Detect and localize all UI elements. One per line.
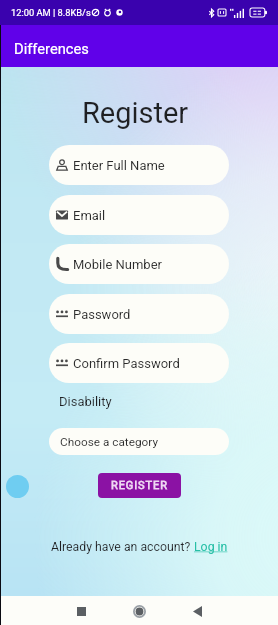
staticText: 12:00 AM | 8.8KB/s [11, 7, 91, 18]
button[interactable]: REGISTER [98, 473, 181, 498]
staticText: Mobile Number [73, 257, 162, 272]
staticText: Disability [59, 394, 112, 409]
staticText: Confirm Password [73, 356, 180, 371]
staticText: Log in [194, 540, 228, 554]
staticText: Choose a category [60, 435, 158, 449]
staticText: REGISTER [111, 479, 168, 492]
button[interactable]: Back [183, 597, 211, 625]
button[interactable]: Log in [194, 540, 228, 554]
button[interactable]: Recents [67, 597, 95, 625]
staticText: Already have an account? [51, 540, 194, 554]
button[interactable]: Password [49, 294, 229, 334]
button[interactable]: Confirm Password [49, 343, 229, 383]
button[interactable]: Email [49, 195, 229, 235]
button[interactable]: Choose a category [49, 428, 229, 455]
staticText: Enter Full Name [73, 158, 165, 173]
staticText: Differences [14, 40, 89, 57]
staticText: Register [0, 96, 274, 130]
button[interactable]: Enter Full Name [49, 145, 229, 185]
button[interactable]: Home [125, 597, 153, 625]
staticText: Password [73, 307, 131, 322]
button[interactable]: Chat [6, 475, 29, 498]
staticText: Email [73, 208, 106, 223]
button[interactable]: Mobile Number [49, 244, 229, 284]
